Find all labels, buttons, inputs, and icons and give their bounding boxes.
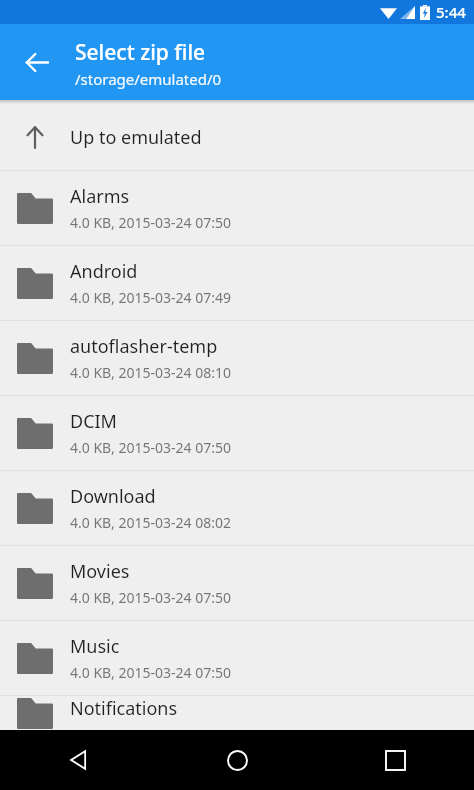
button[interactable]: Android: [0, 246, 474, 320]
staticText: Alarms: [70, 184, 130, 209]
staticText: 4.0 KB, 2015-03-24 07:49: [70, 288, 231, 307]
button[interactable]: Back: [0, 730, 158, 790]
staticText: Notifications: [70, 696, 178, 721]
staticText: DCIM: [70, 409, 117, 434]
staticText: Up to emulated: [70, 125, 202, 150]
staticText: 4.0 KB, 2015-03-24 07:50: [70, 588, 231, 607]
staticText: 4.0 KB, 2015-03-24 07:50: [70, 438, 231, 457]
button[interactable]: Home: [158, 730, 316, 790]
button[interactable]: Music: [0, 621, 474, 695]
button[interactable]: Navigate up: [12, 38, 60, 86]
staticText: /storage/emulated/0: [75, 69, 222, 89]
button[interactable]: Up to emulated: [0, 104, 474, 170]
button[interactable]: Recent apps: [316, 730, 474, 790]
staticText: 5:44: [436, 2, 466, 22]
button[interactable]: Notifications: [0, 696, 474, 730]
staticText: 4.0 KB, 2015-03-24 07:50: [70, 213, 231, 232]
staticText: Select zip file: [75, 38, 206, 67]
button[interactable]: autoflasher-temp: [0, 321, 474, 395]
button[interactable]: DCIM: [0, 396, 474, 470]
staticText: autoflasher-temp: [70, 334, 218, 359]
staticText: Android: [70, 259, 138, 284]
staticText: 4.0 KB, 2015-03-24 08:02: [70, 513, 231, 532]
button[interactable]: Download: [0, 471, 474, 545]
staticText: Download: [70, 484, 156, 509]
staticText: 4.0 KB, 2015-03-24 07:50: [70, 663, 231, 682]
button[interactable]: Movies: [0, 546, 474, 620]
button[interactable]: Alarms: [0, 171, 474, 245]
staticText: Music: [70, 634, 120, 659]
staticText: 4.0 KB, 2015-03-24 08:10: [70, 363, 231, 382]
staticText: Movies: [70, 559, 130, 584]
